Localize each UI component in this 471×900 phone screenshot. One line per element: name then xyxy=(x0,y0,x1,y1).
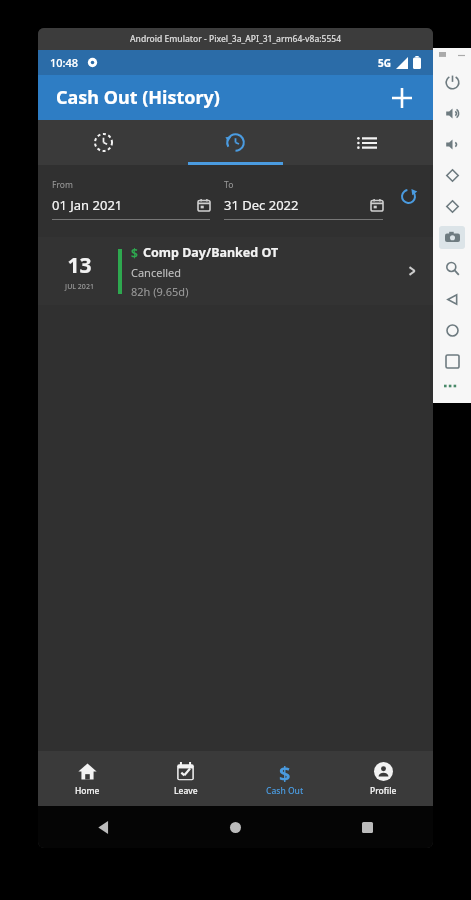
button[interactable]: Home xyxy=(38,751,136,806)
staticText: 82h (9.65d) xyxy=(131,284,189,299)
staticText: JUL 2021 xyxy=(65,282,94,292)
staticText: Cash Out (History) xyxy=(56,85,220,110)
button[interactable]: Home xyxy=(169,806,301,848)
button[interactable]: Overview xyxy=(435,346,469,377)
button[interactable]: Rotate right xyxy=(435,191,469,222)
button[interactable]: Pending xyxy=(38,120,169,165)
button[interactable]: 13 xyxy=(38,237,433,305)
staticText: Leave xyxy=(174,785,198,797)
button[interactable]: Volume up xyxy=(435,98,469,129)
button[interactable]: $ xyxy=(235,751,334,806)
button[interactable]: From xyxy=(52,173,210,220)
staticText: 01 Jan 2021 xyxy=(52,196,123,214)
staticText: Comp Day/Banked OT xyxy=(143,244,279,261)
button[interactable]: Power xyxy=(435,67,469,98)
staticText: To xyxy=(224,179,234,191)
button[interactable]: Rotate left xyxy=(435,160,469,191)
staticText: $ xyxy=(131,245,138,261)
staticText: 31 Dec 2022 xyxy=(224,196,299,214)
button[interactable]: History xyxy=(169,120,301,165)
button[interactable]: Profile xyxy=(334,751,433,806)
staticText: 5G xyxy=(378,56,391,70)
staticText: Android Emulator - Pixel_3a_API_31_arm64… xyxy=(130,33,342,45)
staticText: Cancelled xyxy=(131,265,182,280)
staticText: From xyxy=(52,179,73,191)
button[interactable]: Home xyxy=(435,315,469,346)
button[interactable]: To xyxy=(224,173,383,220)
staticText: 13 xyxy=(67,251,92,280)
button[interactable]: Leave xyxy=(136,751,235,806)
staticText: Cash Out xyxy=(266,785,304,797)
button[interactable]: Zoom xyxy=(435,253,469,284)
button[interactable]: Back xyxy=(38,806,169,848)
button[interactable]: Recents xyxy=(301,806,433,848)
button[interactable]: Refresh xyxy=(393,181,423,211)
button[interactable]: Volume down xyxy=(435,129,469,160)
staticText: $ xyxy=(279,760,291,782)
button[interactable]: Add xyxy=(385,81,419,115)
button[interactable]: All records xyxy=(301,120,433,165)
staticText: Home xyxy=(75,785,100,797)
staticText: 10:48 xyxy=(50,55,79,70)
button[interactable]: Back xyxy=(435,284,469,315)
button[interactable]: Screenshot xyxy=(435,222,469,253)
staticText: Profile xyxy=(370,785,397,797)
